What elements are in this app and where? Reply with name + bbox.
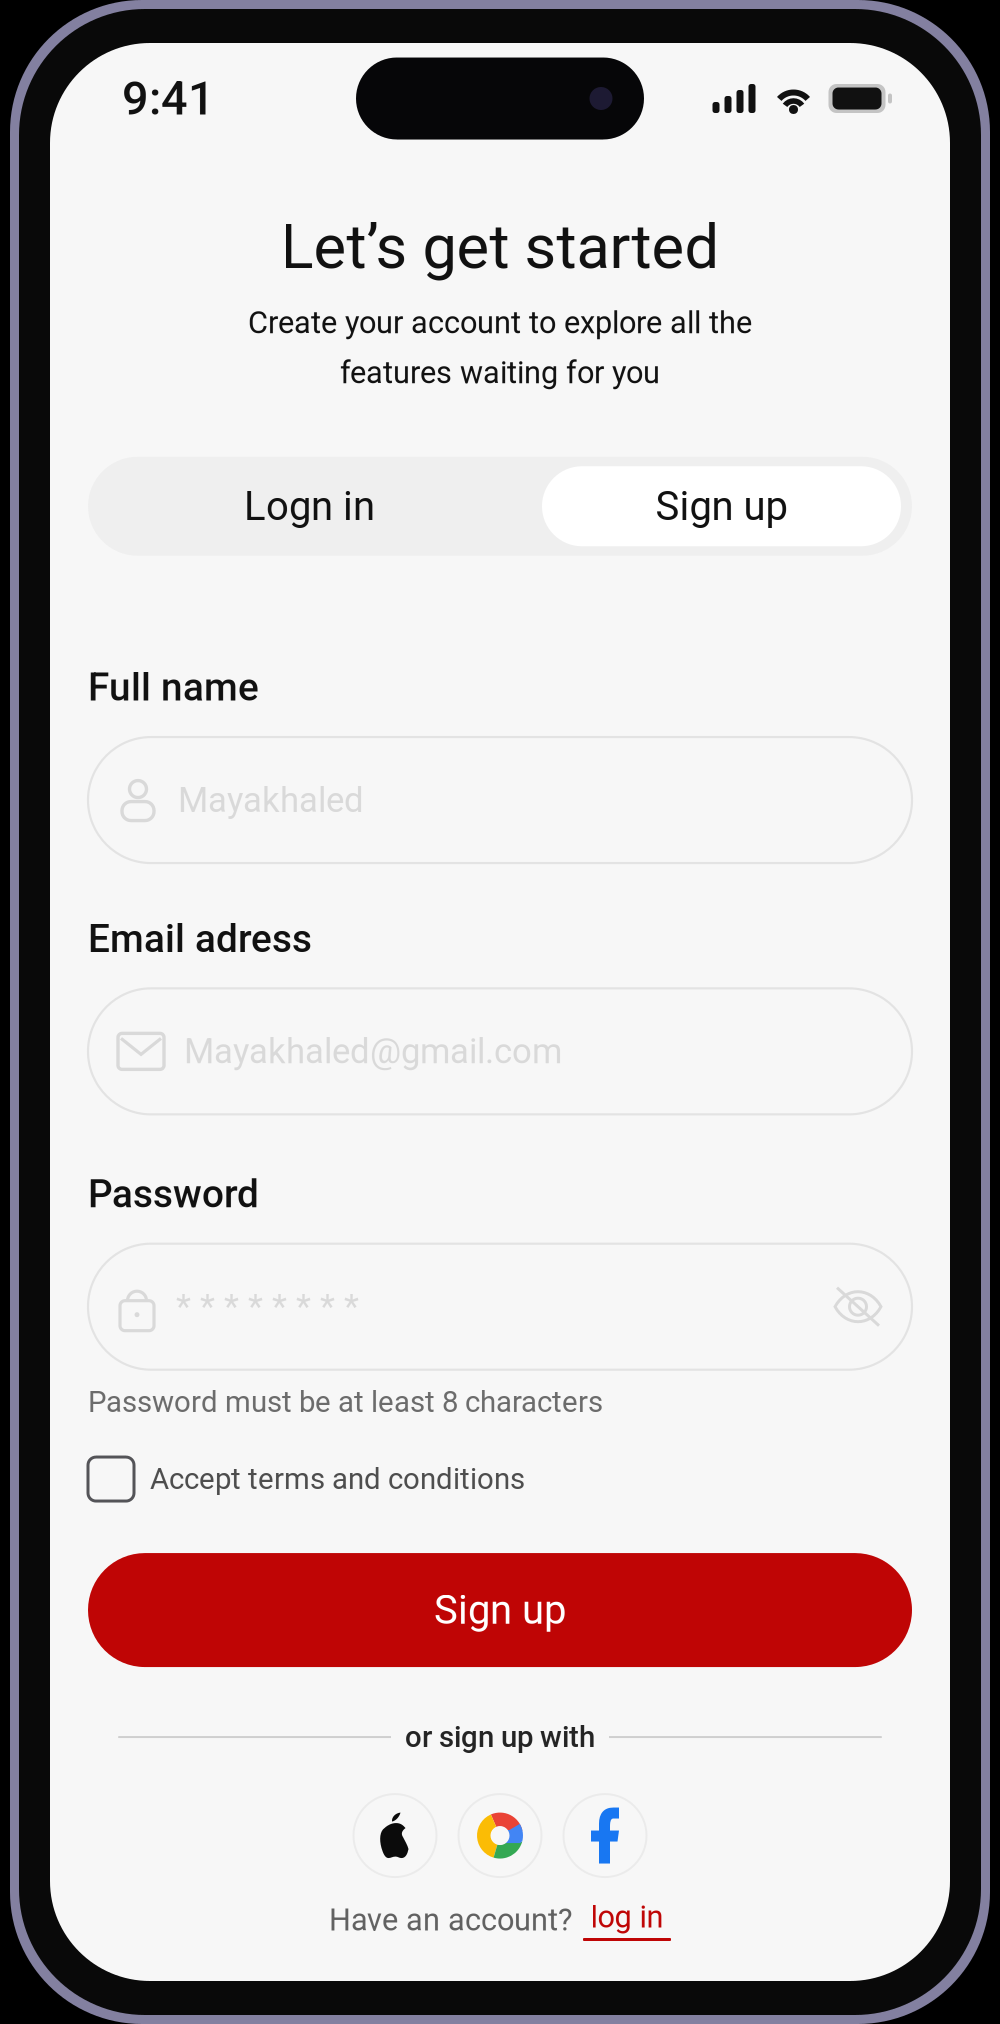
staticText: Password bbox=[88, 1171, 259, 1217]
button[interactable]: Mayakhaled bbox=[88, 737, 912, 863]
staticText: Sign up bbox=[655, 483, 787, 530]
staticText: Full name bbox=[88, 665, 259, 710]
staticText: Password must be at least 8 characters bbox=[88, 1385, 603, 1419]
staticText: Accept terms and conditions bbox=[150, 1462, 525, 1496]
staticText: Mayakhaled@gmail.com bbox=[184, 1031, 562, 1072]
staticText: * * * * * * * * bbox=[176, 1286, 359, 1327]
button[interactable]: Sign up with Google bbox=[458, 1794, 541, 1877]
button[interactable]: Accept terms and conditions bbox=[88, 1457, 912, 1501]
staticText: Logn in bbox=[244, 483, 375, 530]
button[interactable]: Have an account? bbox=[329, 1899, 671, 1941]
staticText: Email adress bbox=[88, 916, 312, 961]
staticText: Create your account to explore all the bbox=[248, 305, 752, 341]
button[interactable]: Sign up with Apple bbox=[353, 1794, 436, 1877]
staticText: Sign up bbox=[434, 1587, 566, 1633]
button[interactable]: Logn in bbox=[88, 457, 531, 556]
button[interactable]: * * * * * * * * bbox=[88, 1244, 912, 1370]
button[interactable]: Sign up bbox=[88, 1553, 912, 1667]
staticText: Mayakhaled bbox=[178, 780, 364, 820]
staticText: Have an account? bbox=[329, 1902, 572, 1938]
staticText: 9:41 bbox=[122, 71, 215, 126]
button[interactable]: Sign up with Facebook bbox=[563, 1794, 646, 1877]
staticText: or sign up with bbox=[405, 1720, 595, 1754]
button[interactable]: Sign up bbox=[531, 457, 912, 556]
staticText: features waiting for you bbox=[340, 355, 660, 391]
button[interactable]: Mayakhaled@gmail.com bbox=[88, 988, 912, 1114]
staticText: log in bbox=[590, 1899, 663, 1935]
staticText: Let’s get started bbox=[280, 211, 719, 283]
